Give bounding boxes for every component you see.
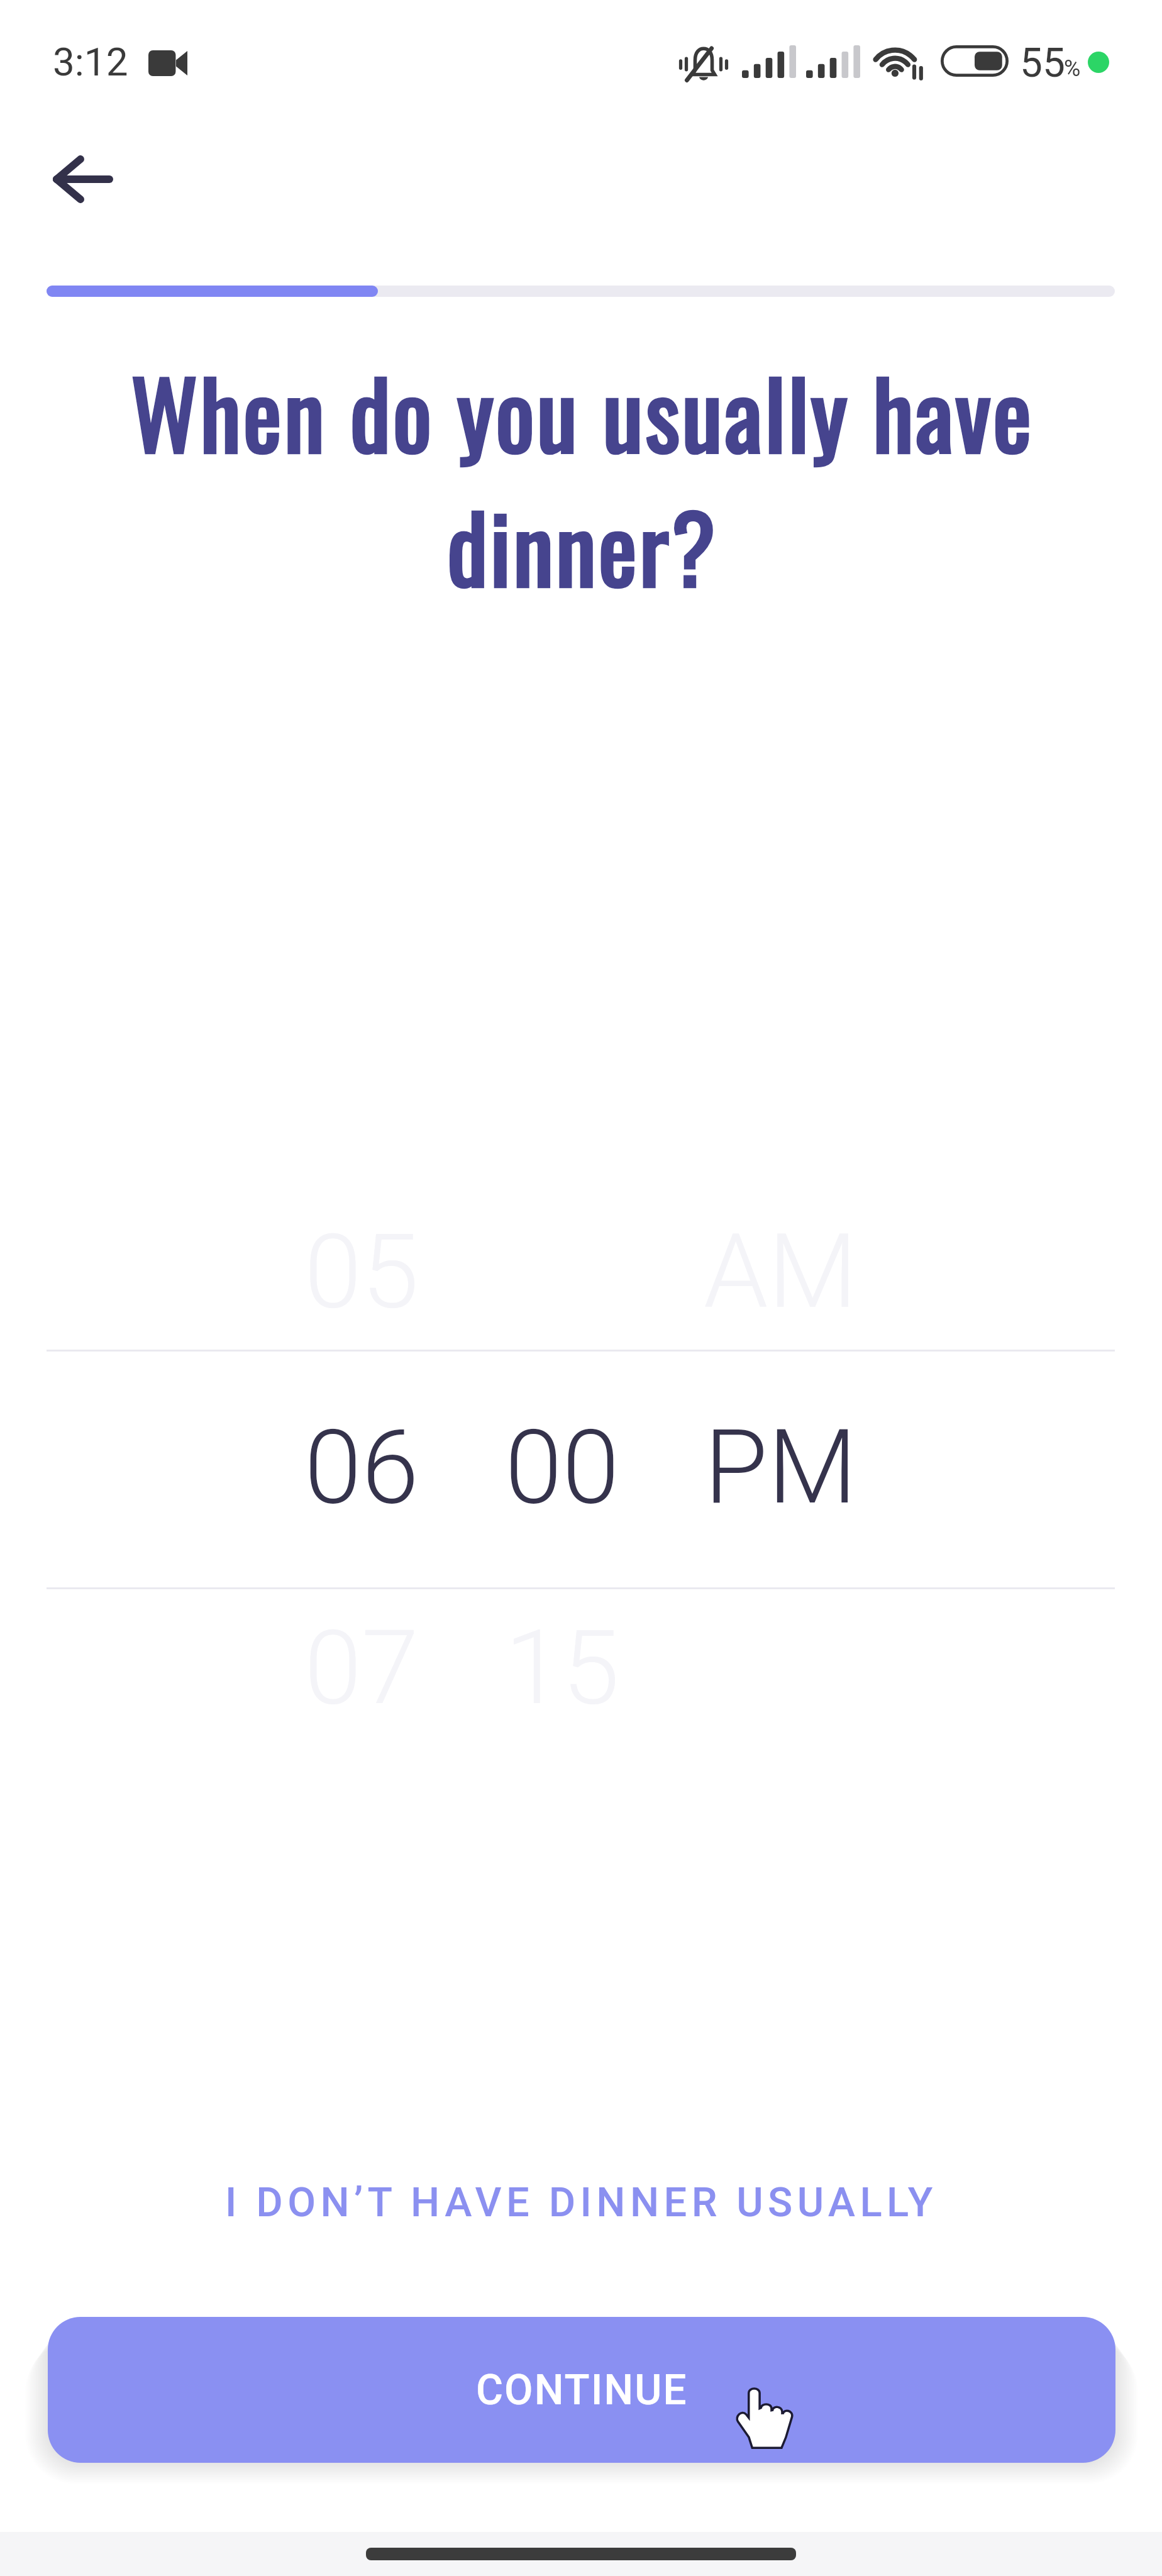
staticText: I DON’T HAVE DINNER USUALLY (225, 2179, 938, 2226)
button[interactable]: CONTINUE (48, 2317, 1115, 2463)
staticText: When do you usually have dinner? (70, 343, 1094, 613)
staticText: 55 (1020, 40, 1065, 87)
button[interactable]: Back (33, 129, 133, 230)
staticText: PM (704, 1407, 857, 1528)
staticText: 3:12 (53, 39, 128, 85)
staticText: 15 (505, 1607, 619, 1728)
button[interactable]: I DON’T HAVE DINNER USUALLY (0, 2149, 1162, 2256)
staticText: % (1064, 55, 1081, 82)
staticText: AM (704, 1211, 858, 1332)
staticText: CONTINUE (476, 2366, 688, 2414)
button[interactable]: AM or PM (663, 1170, 865, 1723)
staticText: 06 (304, 1407, 419, 1528)
button[interactable]: Hour (261, 1170, 462, 1723)
staticText: 05 (304, 1211, 419, 1332)
staticText: 00 (505, 1407, 619, 1528)
staticText: 07 (304, 1607, 419, 1728)
button[interactable]: Minute (462, 1170, 663, 1723)
